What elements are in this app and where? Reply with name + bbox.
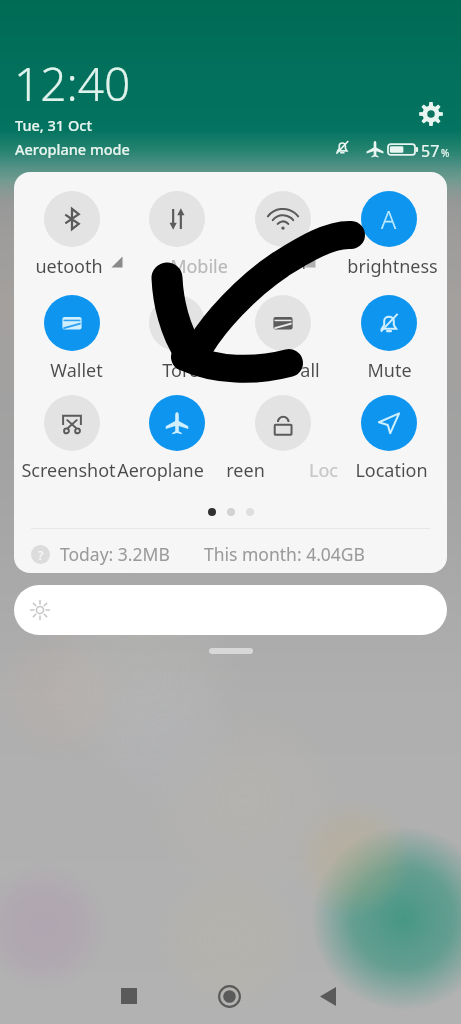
staticText: Mute [367,358,412,383]
staticText: reen [226,458,265,483]
staticText: Wallet [50,358,103,383]
button[interactable]: Settings [416,99,446,129]
staticText: % [441,146,450,160]
button[interactable] [249,389,317,457]
staticText: Today: 3.2MB [60,542,170,566]
button[interactable] [143,289,211,357]
staticText: 12:40 [14,52,131,115]
staticText: Tue, 31 Oct [15,115,92,135]
staticText: uetooth [35,254,103,279]
staticText: A [381,202,397,236]
staticText: Aeroplane mode [15,139,130,159]
staticText: Mobile [170,254,228,279]
button[interactable] [38,389,106,457]
button[interactable] [143,185,211,253]
button[interactable] [249,289,317,357]
staticText: brightness [347,254,438,279]
staticText: ? [38,547,44,563]
button[interactable]: Brightness [14,585,447,635]
staticText: Loc [309,458,338,483]
button[interactable] [355,389,423,457]
button[interactable] [249,185,317,253]
staticText: all [300,358,320,383]
button[interactable] [143,389,211,457]
staticText: Location [355,458,428,483]
staticText: Aeroplane [117,458,204,483]
button[interactable] [38,185,106,253]
staticText: Screenshot [21,458,116,483]
button[interactable]: A [355,185,423,253]
button[interactable] [355,289,423,357]
button[interactable]: Back [302,970,354,1022]
staticText: 57 [421,140,440,162]
staticText: This month: 4.04GB [204,542,365,566]
button[interactable]: Home [203,970,255,1022]
button[interactable]: Recents [103,970,155,1022]
button[interactable] [38,289,106,357]
staticText: Torch [162,358,209,383]
